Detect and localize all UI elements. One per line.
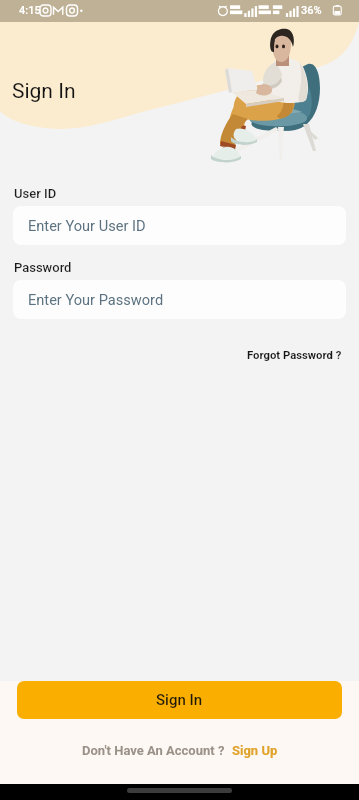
button[interactable]: Forgot Password ? [243, 345, 346, 366]
staticText: Sign In [156, 691, 203, 709]
button[interactable]: Enter Your Password [13, 280, 346, 319]
staticText: Forgot Password ? [247, 349, 342, 362]
staticText: 36% [301, 4, 322, 17]
staticText: Don't Have An Account ? [82, 743, 225, 758]
staticText: Enter Your Password [28, 291, 164, 308]
button[interactable]: Enter Your User ID [13, 206, 346, 245]
staticText: User ID [14, 186, 57, 201]
staticText: Enter Your User ID [28, 217, 146, 234]
staticText: Sign In [12, 79, 76, 104]
staticText: Password [14, 260, 72, 275]
staticText: 4:15 [19, 4, 41, 17]
staticText: Sign Up [232, 743, 278, 758]
button[interactable]: Sign In [17, 681, 342, 719]
button[interactable]: Sign Up [232, 743, 278, 758]
